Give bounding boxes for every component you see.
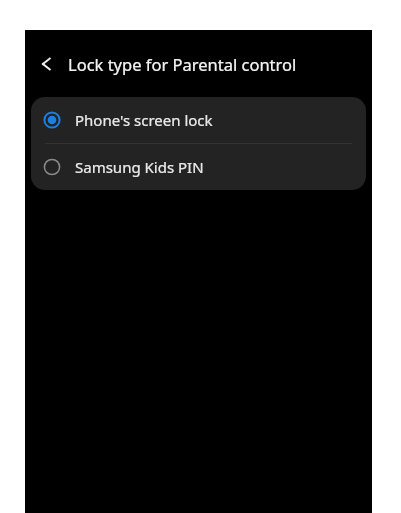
button[interactable]: Phone's screen lock xyxy=(31,97,366,143)
staticText: Phone's screen lock xyxy=(75,110,213,130)
staticText: Samsung Kids PIN xyxy=(75,157,204,177)
button[interactable]: Samsung Kids PIN xyxy=(31,144,366,190)
staticText: Lock type for Parental control xyxy=(68,53,401,75)
button[interactable]: Back xyxy=(35,51,61,77)
